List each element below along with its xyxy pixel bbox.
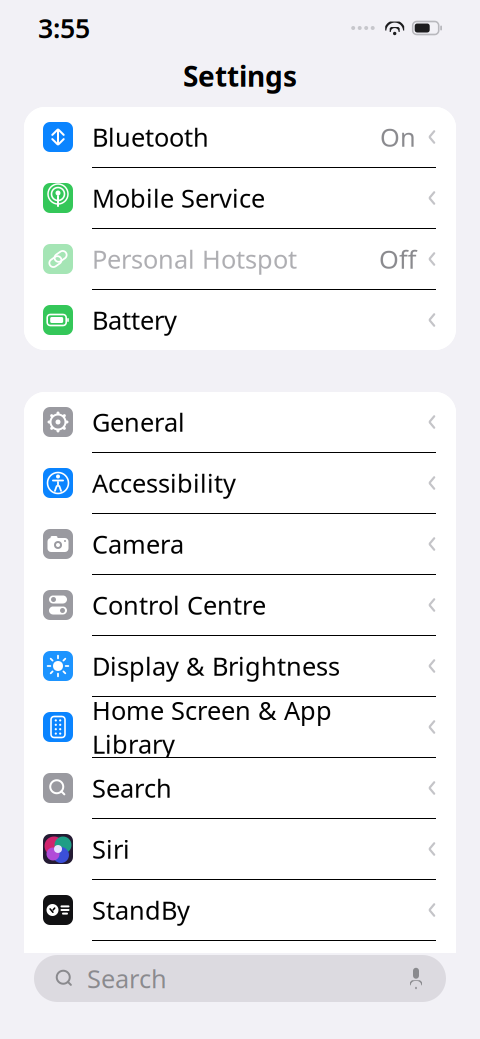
staticText: StandBy [92,893,190,927]
staticText: Battery [92,303,177,337]
staticText: Display & Brightness [92,649,340,683]
staticText: Bluetooth [92,120,209,154]
staticText: Accessibility [92,466,236,500]
staticText: Personal Hotspot [92,242,297,276]
button[interactable]: General [24,392,456,452]
staticText: On [380,120,416,154]
button[interactable]: Control Centre [24,575,456,635]
staticText: Camera [92,527,184,561]
button[interactable]: Personal Hotspot [24,229,456,289]
button[interactable]: StandBy [24,880,456,940]
button[interactable]: Bluetooth [24,107,456,167]
button[interactable]: Camera [24,514,456,574]
staticText: 3:55 [38,10,90,46]
button[interactable]: Search [34,955,446,1002]
staticText: Off [379,242,416,276]
staticText: Mobile Service [92,181,265,215]
button[interactable]: Siri [24,819,456,879]
button[interactable]: Search [24,758,456,818]
staticText: General [92,405,185,439]
staticText: Settings [183,57,297,95]
staticText: Home Screen & App Library [92,693,332,761]
button[interactable]: Display & Brightness [24,636,456,696]
staticText: Siri [92,832,130,866]
button[interactable]: Accessibility [24,453,456,513]
staticText: Search [87,962,167,995]
button[interactable]: Home Screen & App Library [24,697,456,757]
button[interactable]: Mobile Service [24,168,456,228]
staticText: Control Centre [92,588,266,622]
staticText: Search [92,771,172,805]
button[interactable]: Wallpaper [24,941,456,1001]
button[interactable]: Battery [24,290,456,350]
